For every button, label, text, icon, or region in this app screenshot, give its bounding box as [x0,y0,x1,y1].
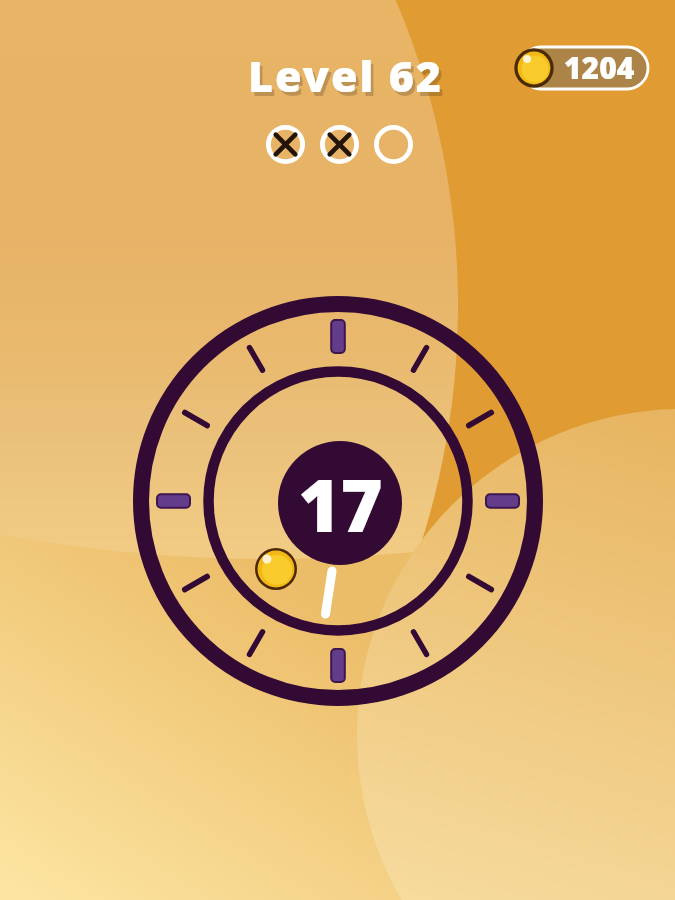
button[interactable]: Attempt used [320,125,374,163]
staticText: Level 62 [248,46,444,105]
staticText: 1204 [564,47,635,88]
staticText: Level 62 [251,50,447,109]
button[interactable]: Attempt used [266,125,320,163]
button[interactable]: Attempt left [374,125,428,163]
button[interactable]: Coins 1204 [520,47,648,89]
staticText: 17 [298,455,383,547]
